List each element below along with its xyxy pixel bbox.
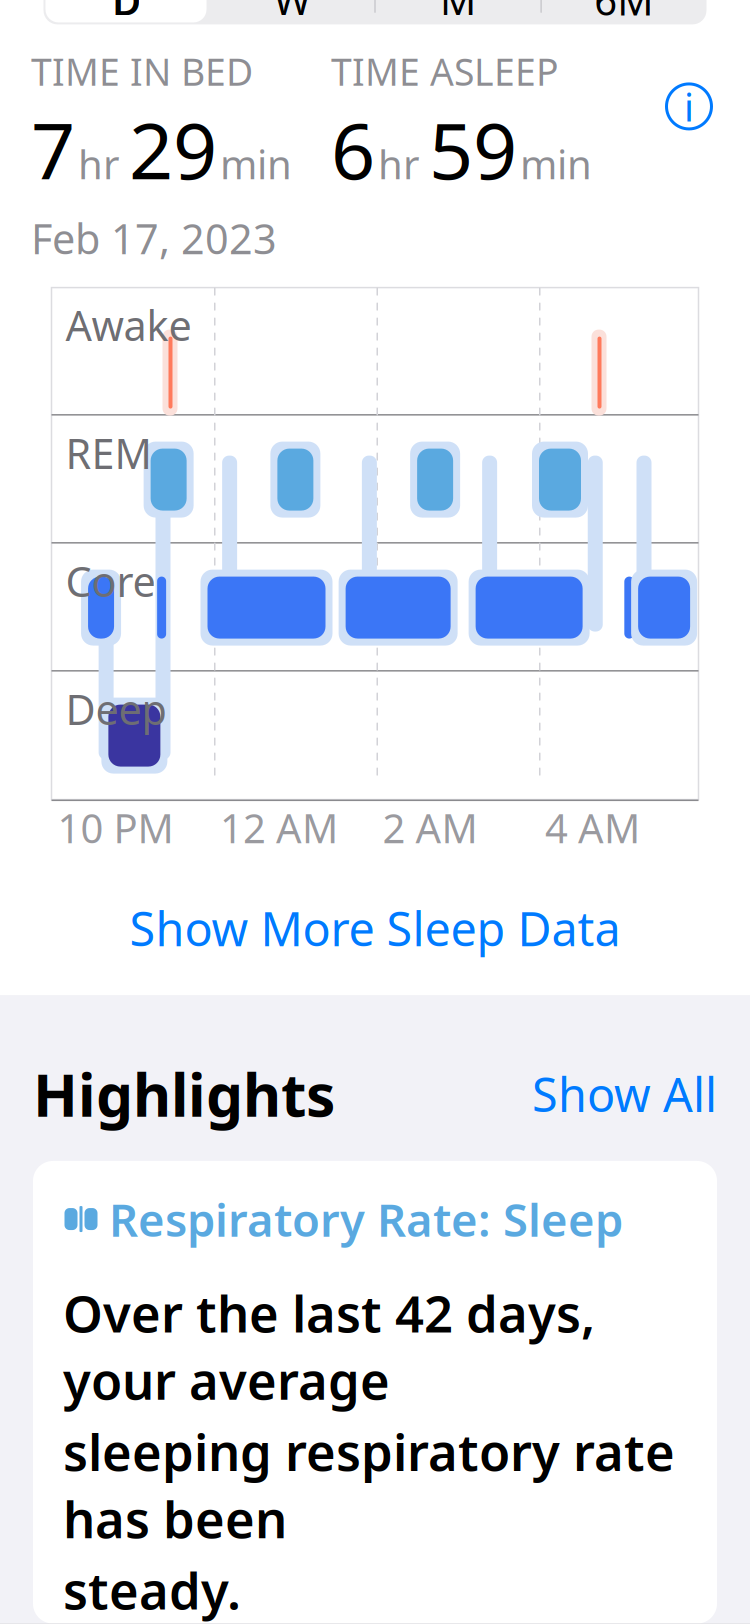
button[interactable]: Show All xyxy=(532,1057,717,1131)
staticText: 7 xyxy=(31,98,75,201)
button[interactable]: Respiratory Rate: Sleep xyxy=(33,1161,717,1624)
staticText: 4 AM xyxy=(545,801,640,854)
staticText: Respiratory Rate: Sleep xyxy=(109,1189,623,1249)
staticText: Deep xyxy=(65,682,166,736)
staticText: 10 PM xyxy=(57,801,173,854)
staticText: sleeping respiratory rate has been xyxy=(63,1418,675,1552)
staticText: steady. xyxy=(63,1556,241,1624)
staticText: TIME ASLEEP xyxy=(331,46,559,96)
staticText: M xyxy=(440,0,476,26)
staticText: W xyxy=(274,0,311,26)
staticText: Show All xyxy=(532,1063,717,1125)
staticText: Feb 17, 2023 xyxy=(31,211,277,266)
staticText: D xyxy=(112,0,141,26)
staticText: Over the last 42 days, your average xyxy=(63,1279,595,1414)
staticText: 6 xyxy=(331,98,375,201)
button[interactable]: Show More Sleep Data xyxy=(0,873,750,983)
button[interactable]: W xyxy=(209,0,375,24)
button[interactable]: D xyxy=(43,0,209,24)
staticText: 2 AM xyxy=(382,801,477,854)
staticText: min xyxy=(520,137,592,190)
staticText: Awake xyxy=(65,298,191,352)
button[interactable]: M xyxy=(375,0,541,24)
button[interactable]: 6M xyxy=(541,0,707,24)
staticText: Core xyxy=(65,554,155,608)
staticText: i xyxy=(684,81,694,132)
button[interactable]: About sleep data xyxy=(659,76,719,136)
staticText: 29 xyxy=(129,98,217,201)
staticText: Show More Sleep Data xyxy=(129,897,620,959)
staticText: REM xyxy=(65,426,151,480)
staticText: hr xyxy=(78,137,120,190)
staticText: Highlights xyxy=(33,1055,335,1133)
staticText: hr xyxy=(378,137,420,190)
staticText: min xyxy=(220,137,292,190)
staticText: 12 AM xyxy=(220,801,338,854)
staticText: 6M xyxy=(594,0,653,26)
staticText: TIME IN BED xyxy=(31,46,253,96)
staticText: 59 xyxy=(429,98,517,201)
